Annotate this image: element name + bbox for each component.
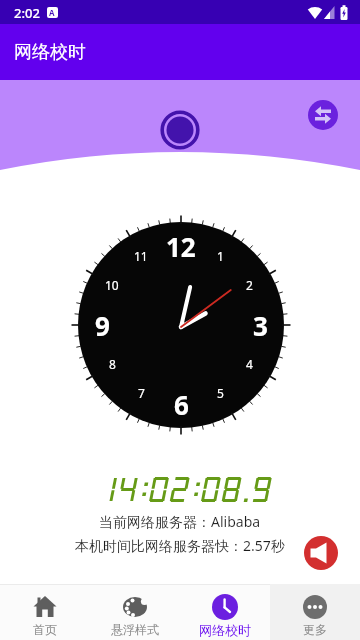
staticText: 网络校时 [14,41,86,64]
button[interactable] [308,100,338,130]
staticText: A [49,7,55,18]
staticText: 4 [246,356,253,372]
staticText: 2:02 [14,4,40,22]
staticText: 悬浮样式 [111,622,159,637]
staticText: 1 [217,248,224,264]
button[interactable]: 悬浮样式 [90,584,180,640]
staticText: 更多 [303,622,327,637]
staticText: 2 [246,277,253,293]
staticText: 9 [95,308,110,343]
staticText: 6 [174,387,189,422]
staticText: 当前网络服务器：Alibaba [99,512,261,531]
staticText: 10 [105,277,119,293]
staticText: 本机时间比网络服务器快：2.57秒 [75,536,285,555]
button[interactable]: 更多 [270,584,360,640]
staticText: 3 [253,308,268,343]
staticText: 网络校时 [199,622,251,638]
button[interactable]: 网络校时 [180,584,270,640]
staticText: 首页 [33,622,57,637]
button[interactable] [160,110,200,150]
staticText: 11 [134,248,148,264]
button[interactable]: 首页 [0,584,90,640]
staticText: 12 [166,229,196,264]
button[interactable] [304,536,338,570]
staticText: 7 [138,385,145,401]
staticText: 8 [109,356,116,372]
staticText: 5 [217,385,224,401]
